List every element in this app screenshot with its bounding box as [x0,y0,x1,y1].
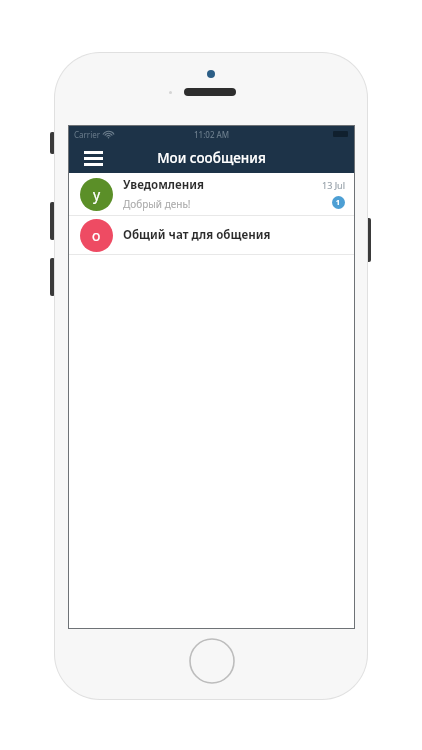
staticText: о [92,226,101,245]
staticText: у [93,185,101,204]
staticText: 13 Jul [322,179,345,191]
button[interactable]: Menu [80,145,106,171]
staticText: Carrier [74,129,101,140]
staticText: Общий чат для общения [123,227,271,243]
button[interactable]: у [69,173,354,215]
staticText: Уведомления [123,177,204,193]
staticText: 1 [336,198,341,208]
staticText: Мои сообщения [157,149,266,167]
staticText: Добрый день! [123,197,191,211]
button[interactable]: о [69,216,354,254]
staticText: 11:02 AM [194,129,230,140]
